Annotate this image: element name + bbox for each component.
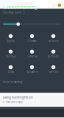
button[interactable]: Cameras — [21, 48, 43, 60]
staticText: Lights — [7, 39, 15, 43]
staticText: Security — [48, 39, 58, 43]
staticText: Speakers — [26, 70, 37, 74]
staticText: Scenes — [49, 70, 58, 74]
staticText: Living room lights on — [3, 96, 33, 99]
button[interactable]: Notifications — [52, 3, 56, 7]
button[interactable]: Security — [43, 32, 64, 45]
button[interactable]: Locks — [0, 63, 21, 76]
staticText: Cameras — [27, 55, 37, 58]
button[interactable]: Energy — [0, 48, 21, 60]
staticText: Energy — [6, 55, 15, 58]
button[interactable]: Speakers — [21, 63, 43, 76]
staticText: Climate — [27, 39, 37, 43]
button[interactable]: Scenes — [43, 63, 64, 76]
staticText: 2 minutes ago — [3, 100, 23, 104]
staticText: Recent activity — [3, 80, 22, 83]
staticText: Good morning — [3, 3, 37, 11]
staticText: Tuesday, June 3 — [3, 11, 25, 14]
button[interactable]: Climate — [21, 32, 43, 45]
button[interactable]: Lights — [0, 32, 21, 45]
button[interactable]: Settings — [43, 48, 64, 60]
staticText: Settings — [48, 55, 59, 58]
staticText: Locks — [8, 70, 14, 74]
